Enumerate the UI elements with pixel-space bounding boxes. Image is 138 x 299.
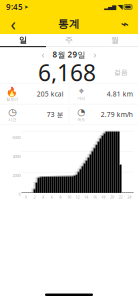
staticText: 20 [110,194,114,199]
button[interactable]: Previous day [37,48,49,60]
staticText: 2.79 km/h [101,110,133,119]
staticText: 시간 [8,117,16,122]
staticText: ◷ [8,107,16,117]
staticText: 주 [65,35,73,45]
staticText: 12 [75,194,79,199]
button[interactable]: Share [115,14,135,34]
staticText: › [93,48,96,61]
staticText: ‹ [41,48,44,61]
staticText: 14 [84,194,88,199]
staticText: 속도 [77,117,85,122]
staticText: ⌁ [121,16,129,31]
staticText: 18 [101,194,105,199]
staticText: 0 [18,192,20,197]
staticText: ➤ [24,4,28,10]
staticText: 4000 [12,154,20,159]
button[interactable]: Back [3,14,23,34]
staticText: ◔ [77,107,85,117]
staticText: ◥ [117,3,122,11]
staticText: 16 [93,194,97,199]
staticText: 6,168 [38,57,96,87]
staticText: 통계 [58,17,80,30]
staticText: 6 [51,194,53,199]
staticText: 22 [119,194,123,199]
staticText: 월 [111,35,119,45]
staticText: 2000 [12,173,20,178]
staticText: 9:45 [6,2,23,12]
staticText: 거리 [77,96,85,101]
button[interactable]: 일 [0,34,46,46]
button[interactable]: 월 [92,34,138,46]
staticText: 10 [67,194,71,199]
staticText: 8월 29일 [52,49,85,60]
staticText: 205 kcal [37,89,64,98]
staticText: 6000 [12,135,20,140]
staticText: 일 [19,35,27,45]
staticText: 4 [42,194,44,199]
button[interactable]: Next day [89,48,101,60]
staticText: 걸음 [114,68,128,76]
button[interactable]: 주 [46,34,92,46]
staticText: ⌖ [79,87,84,96]
staticText: ▂▄▆ [104,4,116,10]
staticText: 칼로리 [6,97,18,102]
staticText: ‹ [10,12,15,35]
staticText: 73 분 [47,110,64,119]
staticText: 4.81 km [107,89,133,98]
staticText: 2 [33,194,35,199]
staticText: 🔥 [6,86,18,97]
staticText: 0 [25,194,27,199]
staticText: 24 [127,194,131,199]
staticText: 8 [59,194,61,199]
